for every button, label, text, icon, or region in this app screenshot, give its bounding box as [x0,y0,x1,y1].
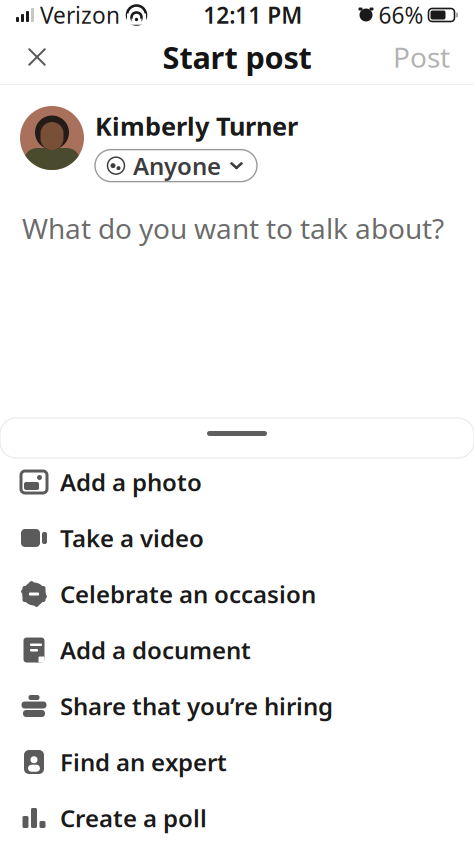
staticText: Verizon [40,0,120,30]
staticText: 66% [378,0,423,30]
staticText: Anyone [133,150,221,182]
button[interactable]: Celebrate an occasion [0,566,474,622]
button[interactable]: Take a video [0,510,474,566]
button[interactable]: Add a document [0,622,474,678]
staticText: Add a document [60,634,251,666]
staticText: Post [393,38,450,76]
button[interactable]: Share that you’re hiring [0,678,474,734]
staticText: Kimberly Turner [95,109,298,143]
button[interactable]: Close [10,30,64,84]
staticText: Find an expert [60,746,227,778]
staticText: What do you want to talk about? [22,210,444,247]
staticText: Create a poll [60,802,207,834]
button[interactable]: Find an expert [0,734,474,790]
staticText: Share that you’re hiring [60,690,333,722]
staticText: 12:11 PM [203,0,302,30]
staticText: Celebrate an occasion [60,578,316,610]
staticText: Start post [162,37,311,77]
staticText: Add a photo [60,466,202,498]
button[interactable]: Post [379,30,464,84]
button[interactable]: What do you want to talk about? [0,182,474,307]
staticText: Take a video [60,522,204,554]
button[interactable]: Create a poll [0,790,474,841]
button[interactable]: Anyone [95,150,257,182]
button[interactable]: Add a photo [0,454,474,510]
